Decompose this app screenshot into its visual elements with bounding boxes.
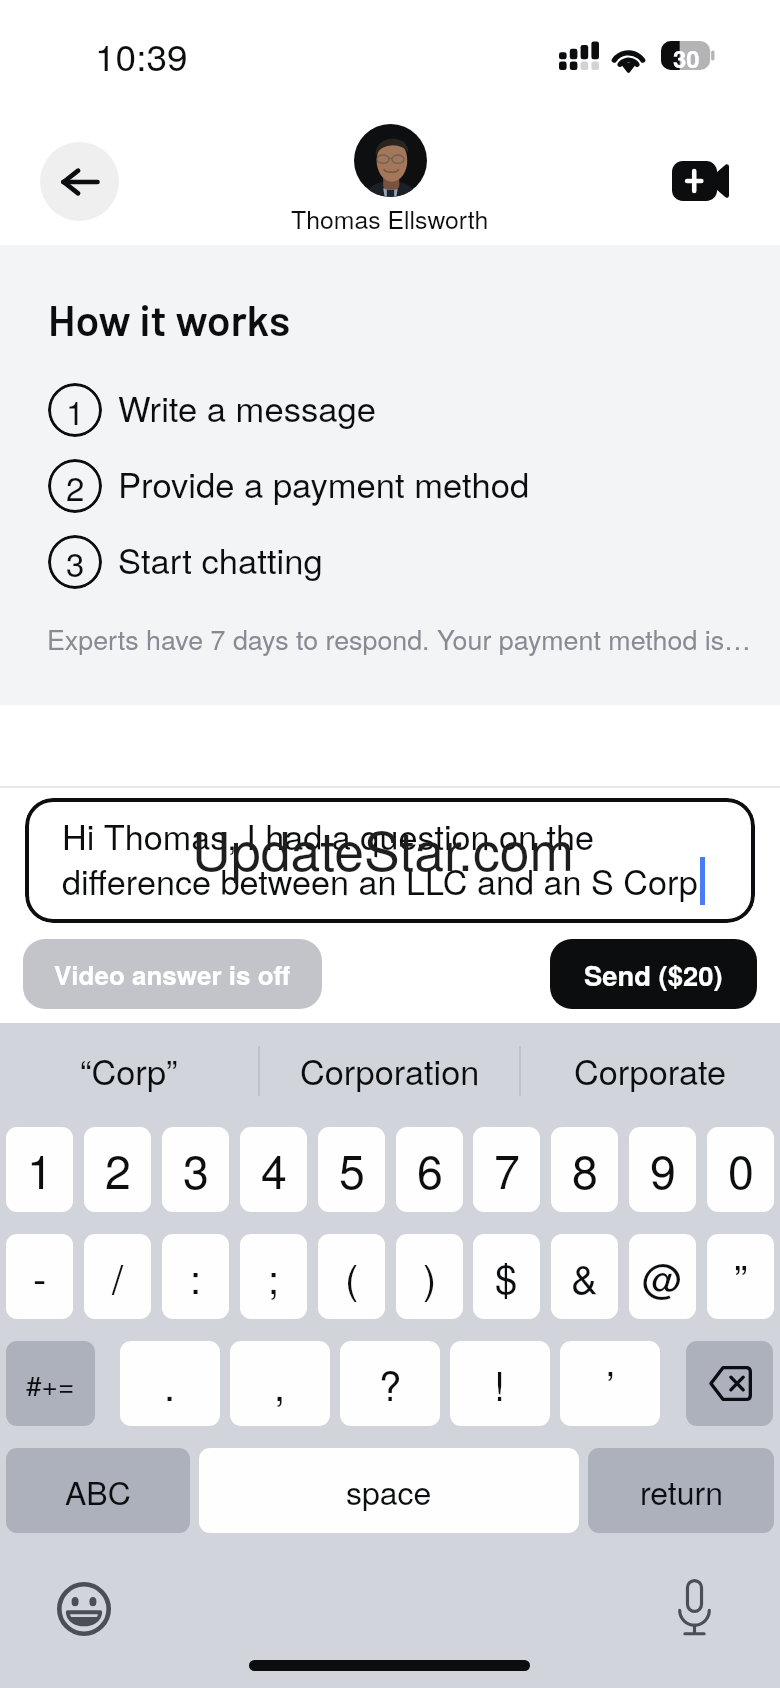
staticText: ” [734, 1248, 748, 1305]
staticText: @ [642, 1248, 683, 1305]
button[interactable]: ( [318, 1234, 385, 1319]
staticText: Corporate [574, 1046, 727, 1095]
button[interactable]: Dictation [676, 1579, 713, 1636]
staticText: How it works [48, 293, 291, 345]
button[interactable]: ’ [560, 1341, 660, 1426]
staticText: ! [494, 1355, 506, 1412]
button[interactable]: 2 [84, 1127, 151, 1212]
staticText: Write a message [118, 382, 376, 432]
button[interactable]: ” [707, 1234, 774, 1319]
staticText: 1 [27, 1136, 53, 1203]
button[interactable]: 0 [707, 1127, 774, 1212]
staticText: $ [495, 1248, 518, 1305]
staticText: “Corp” [80, 1046, 178, 1095]
staticText: 9 [650, 1136, 676, 1203]
staticText: : [190, 1248, 202, 1305]
button[interactable]: & [551, 1234, 618, 1319]
staticText: ? [379, 1355, 402, 1412]
staticText: 5 [339, 1136, 365, 1203]
staticText: Experts have 7 days to respond. Your pay… [47, 619, 751, 657]
staticText: space [346, 1468, 432, 1514]
button[interactable]: “Corp” [0, 1023, 258, 1110]
staticText: ) [423, 1248, 437, 1305]
button[interactable]: 8 [551, 1127, 618, 1212]
button[interactable]: 3 [162, 1127, 229, 1212]
staticText: Send ($20) [584, 955, 723, 994]
staticText: 6 [417, 1136, 443, 1203]
staticText: Thomas Ellsworth [291, 201, 489, 237]
button[interactable]: space [199, 1448, 579, 1533]
button[interactable]: #+= [6, 1341, 95, 1426]
button[interactable]: : [162, 1234, 229, 1319]
staticText: 7 [494, 1136, 520, 1203]
staticText: ABC [65, 1468, 131, 1514]
button[interactable]: ABC [6, 1448, 190, 1533]
button[interactable]: Send ($20) [550, 939, 757, 1009]
staticText: 4 [261, 1136, 287, 1203]
staticText: 2 [105, 1136, 131, 1203]
button[interactable]: 7 [473, 1127, 540, 1212]
staticText: & [571, 1248, 598, 1305]
staticText: , [274, 1355, 286, 1412]
button[interactable]: Corporate [521, 1023, 780, 1110]
staticText: Hi Thomas, I had a question on the [62, 811, 594, 860]
button[interactable]: ? [340, 1341, 440, 1426]
button[interactable]: Emoji keyboard [57, 1582, 111, 1636]
button[interactable]: Backspace [686, 1341, 773, 1426]
staticText: 3 [66, 539, 85, 586]
staticText: 2 [66, 463, 85, 510]
staticText: - [33, 1248, 47, 1305]
button[interactable]: 1 [6, 1127, 73, 1212]
button[interactable]: Hi Thomas, I had a question on the [25, 798, 755, 923]
staticText: 0 [728, 1136, 754, 1203]
button[interactable]: ; [240, 1234, 307, 1319]
staticText: 30 [673, 41, 700, 70]
staticText: . [164, 1355, 176, 1412]
button[interactable]: 5 [318, 1127, 385, 1212]
staticText: Corporation [300, 1046, 480, 1095]
button[interactable]: - [6, 1234, 73, 1319]
button[interactable]: Start video call [672, 161, 729, 201]
staticText: return [640, 1468, 723, 1514]
staticText: Provide a payment method [118, 458, 530, 508]
staticText: Start chatting [118, 534, 323, 584]
button[interactable]: , [230, 1341, 330, 1426]
staticText: difference between an LLC and an S Corp [62, 856, 698, 905]
button[interactable]: 9 [629, 1127, 696, 1212]
staticText: ’ [606, 1355, 615, 1412]
button[interactable]: 4 [240, 1127, 307, 1212]
button[interactable]: return [588, 1448, 774, 1533]
staticText: #+= [26, 1364, 75, 1404]
staticText: / [112, 1248, 124, 1305]
button[interactable]: / [84, 1234, 151, 1319]
button[interactable]: 6 [396, 1127, 463, 1212]
button[interactable]: Video answer is off [23, 939, 322, 1009]
staticText: ; [268, 1248, 280, 1305]
staticText: UpdateStar.com [192, 810, 574, 887]
button[interactable]: . [120, 1341, 220, 1426]
button[interactable]: $ [473, 1234, 540, 1319]
button[interactable]: Back [40, 142, 119, 221]
staticText: Video answer is off [54, 956, 291, 993]
button[interactable]: Corporation [260, 1023, 519, 1110]
staticText: 1 [66, 387, 85, 434]
staticText: 10:39 [95, 29, 188, 82]
staticText: ( [345, 1248, 359, 1305]
button[interactable]: @ [629, 1234, 696, 1319]
staticText: 8 [572, 1136, 598, 1203]
button[interactable]: ! [450, 1341, 550, 1426]
staticText: 3 [183, 1136, 209, 1203]
button[interactable]: ) [396, 1234, 463, 1319]
